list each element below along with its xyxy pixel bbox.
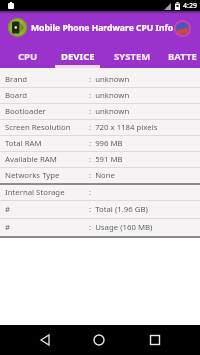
staticText: # bbox=[5, 222, 11, 233]
button[interactable] bbox=[92, 333, 106, 347]
button[interactable]: Brand bbox=[5, 72, 200, 87]
staticText: 4:29 bbox=[183, 1, 197, 11]
staticText: Bootloader bbox=[5, 106, 46, 117]
button[interactable]: Available RAM bbox=[5, 152, 200, 167]
staticText: : Total (1.96 GB) bbox=[89, 204, 148, 215]
staticText: : unknown bbox=[89, 90, 130, 101]
button[interactable] bbox=[148, 333, 162, 347]
staticText: Total RAM bbox=[5, 138, 42, 149]
staticText: : unknown bbox=[89, 74, 130, 85]
staticText: # bbox=[5, 204, 11, 215]
staticText: : None bbox=[89, 170, 116, 181]
button[interactable]: Board bbox=[5, 88, 200, 103]
button[interactable]: Bootloader bbox=[5, 104, 200, 119]
button[interactable]: # bbox=[5, 201, 200, 218]
button[interactable]: CPU bbox=[0, 44, 55, 68]
button[interactable]: Total RAM bbox=[5, 136, 200, 151]
button[interactable] bbox=[38, 333, 52, 347]
staticText: Internal Storage bbox=[5, 187, 65, 198]
staticText: CPU bbox=[18, 50, 38, 63]
staticText: DEVICE bbox=[61, 50, 95, 63]
button[interactable]: BATTE bbox=[164, 44, 200, 68]
staticText: Networks Type bbox=[5, 170, 60, 181]
button[interactable]: SYSTEM bbox=[100, 44, 164, 68]
staticText: BATTE bbox=[168, 50, 197, 63]
button[interactable]: DEVICE bbox=[55, 44, 100, 68]
staticText: : unknown bbox=[89, 106, 130, 117]
staticText: : Usage (160 MB) bbox=[89, 222, 153, 233]
staticText: SYSTEM bbox=[114, 50, 151, 63]
staticText: : 996 MB bbox=[89, 138, 123, 149]
staticText: Brand bbox=[5, 74, 28, 85]
button[interactable]: Networks Type bbox=[5, 168, 200, 183]
staticText: Board bbox=[5, 90, 28, 101]
staticText: Screen Resolution bbox=[5, 122, 71, 133]
staticText: Mobile Phone Hardware CPU Info bbox=[31, 22, 174, 34]
button[interactable]: # bbox=[5, 219, 200, 236]
staticText: : 720 x 1184 pixels bbox=[89, 122, 158, 133]
staticText: : 591 MB bbox=[89, 154, 123, 165]
button[interactable]: Internal Storage bbox=[5, 185, 200, 200]
staticText: Available RAM bbox=[5, 154, 57, 165]
button[interactable]: Screen Resolution bbox=[5, 120, 200, 135]
staticText: : bbox=[89, 187, 92, 198]
